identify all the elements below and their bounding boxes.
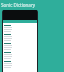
staticText: Sonic Dictionary	[1, 2, 36, 8]
